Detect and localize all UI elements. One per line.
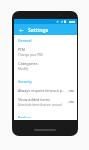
button[interactable]: Toggle	[67, 100, 74, 104]
button[interactable]: PIN	[14, 45, 77, 59]
staticText: Auto-hide items that are unused	[18, 103, 62, 107]
button[interactable]: Categories	[14, 59, 77, 73]
staticText: Always request timeout pin	[18, 88, 65, 93]
staticText: Show added items	[18, 97, 50, 102]
staticText: Modify	[18, 67, 29, 71]
staticText: General	[18, 38, 32, 43]
staticText: Categories	[18, 61, 38, 66]
staticText: Security	[18, 79, 32, 84]
staticText: Backup	[18, 115, 31, 118]
button[interactable]: Back	[17, 26, 25, 34]
button[interactable]: Toggle	[67, 89, 74, 93]
staticText: PIN	[18, 47, 25, 52]
staticText: Settings	[28, 26, 49, 33]
staticText: Change your PIN	[18, 53, 43, 57]
button[interactable]: Show added items	[14, 95, 77, 109]
button[interactable]: Always request timeout pin	[14, 86, 77, 95]
